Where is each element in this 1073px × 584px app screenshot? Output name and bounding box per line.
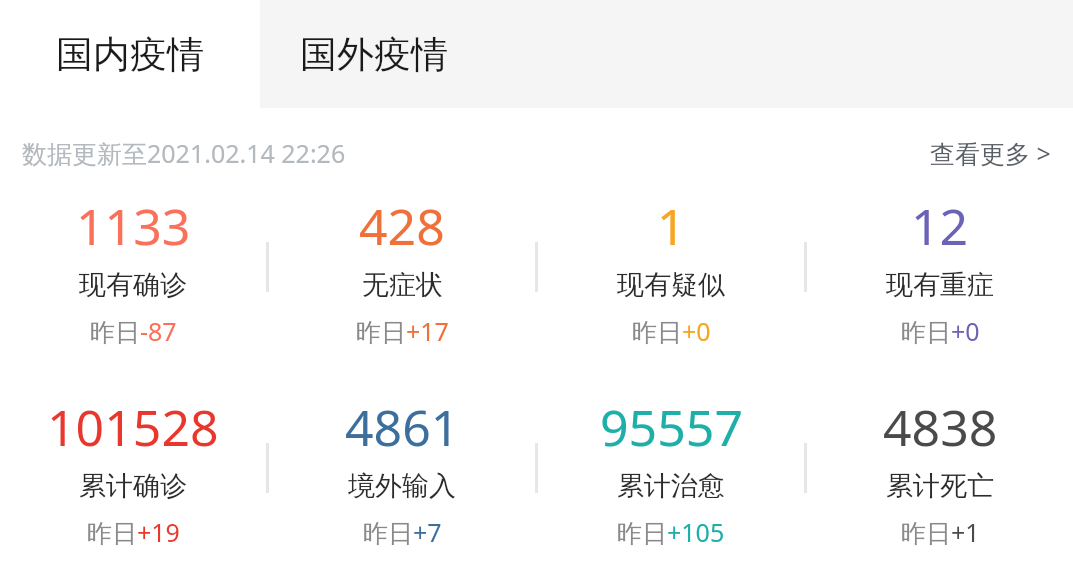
staticText: 国内疫情 [56,31,204,78]
staticText: 查看更多 > [930,136,1051,170]
staticText: 12 [911,192,969,260]
staticText: 现有重症 [886,268,994,302]
staticText: 101528 [47,393,219,461]
staticText: 昨日+1 [901,515,980,549]
staticText: 1133 [76,192,191,260]
staticText: 累计确诊 [79,469,187,503]
button[interactable]: 95557 [538,393,804,549]
staticText: 4861 [345,393,460,461]
button[interactable]: 国内疫情 [0,0,260,108]
staticText: 昨日+19 [87,515,180,549]
button[interactable]: 428 [269,192,535,348]
button[interactable]: 4838 [807,393,1073,549]
staticText: 95557 [600,393,743,461]
staticText: 数据更新至2021.02.14 22:26 [22,136,346,170]
staticText: 国外疫情 [300,31,448,78]
staticText: 累计死亡 [886,469,994,503]
staticText: 累计治愈 [617,469,725,503]
staticText: 昨日+17 [356,314,449,348]
staticText: 昨日-87 [90,314,177,348]
button[interactable]: 查看更多 > [930,136,1051,170]
staticText: 昨日+7 [363,515,442,549]
button[interactable]: 1133 [0,192,266,348]
staticText: 428 [359,192,445,260]
button[interactable]: 101528 [0,393,266,549]
staticText: 1 [657,192,686,260]
button[interactable]: 4861 [269,393,535,549]
staticText: 昨日+0 [901,314,980,348]
button[interactable]: 国外疫情 [260,0,1073,108]
staticText: 现有疑似 [617,268,725,302]
staticText: 境外输入 [348,469,456,503]
staticText: 昨日+0 [632,314,711,348]
staticText: 4838 [883,393,998,461]
staticText: 昨日+105 [617,515,725,549]
staticText: 现有确诊 [79,268,187,302]
button[interactable]: 1 [538,192,804,348]
button[interactable]: 12 [807,192,1073,348]
staticText: 无症状 [362,268,443,302]
